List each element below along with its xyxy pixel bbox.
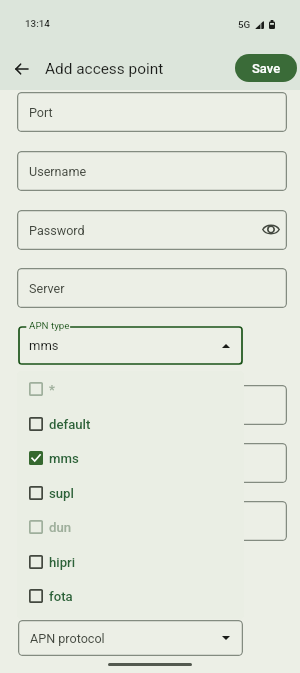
staticText: mms: [29, 338, 59, 353]
button[interactable]: APN protocol: [18, 620, 243, 656]
staticText: hipri: [49, 555, 76, 570]
button[interactable]: supl: [17, 476, 244, 510]
staticText: supl: [49, 486, 74, 501]
button[interactable]: Save: [235, 54, 297, 82]
button[interactable]: Expand APN protocol: [215, 627, 237, 649]
button[interactable]: *: [17, 372, 244, 406]
staticText: APN type: [29, 320, 70, 331]
button[interactable]: [17, 501, 287, 541]
staticText: dun: [49, 520, 72, 535]
staticText: Add access point: [45, 60, 164, 78]
staticText: Username: [29, 164, 87, 179]
staticText: Server: [29, 281, 65, 296]
button[interactable]: default: [17, 407, 244, 441]
button[interactable]: dun: [17, 510, 244, 544]
staticText: fota: [49, 589, 73, 604]
staticText: 5G: [238, 19, 251, 30]
button[interactable]: fota: [17, 579, 244, 613]
button[interactable]: Server: [17, 268, 287, 308]
staticText: *: [49, 382, 55, 397]
staticText: mms: [49, 451, 79, 466]
button[interactable]: Show password: [259, 217, 283, 241]
button[interactable]: [17, 385, 287, 425]
button[interactable]: Password: [17, 210, 287, 250]
staticText: Password: [29, 223, 85, 238]
button[interactable]: Port: [17, 92, 287, 132]
button[interactable]: mms: [18, 326, 243, 365]
button[interactable]: [17, 443, 287, 483]
staticText: default: [49, 417, 91, 432]
staticText: Port: [29, 105, 53, 120]
button[interactable]: Back: [9, 56, 34, 81]
button[interactable]: Collapse APN type: [215, 335, 237, 357]
staticText: APN protocol: [30, 631, 105, 646]
button[interactable]: mms: [17, 441, 244, 475]
button[interactable]: hipri: [17, 545, 244, 579]
staticText: Save: [252, 61, 281, 76]
staticText: 13:14: [25, 18, 50, 29]
button[interactable]: Username: [17, 151, 287, 191]
